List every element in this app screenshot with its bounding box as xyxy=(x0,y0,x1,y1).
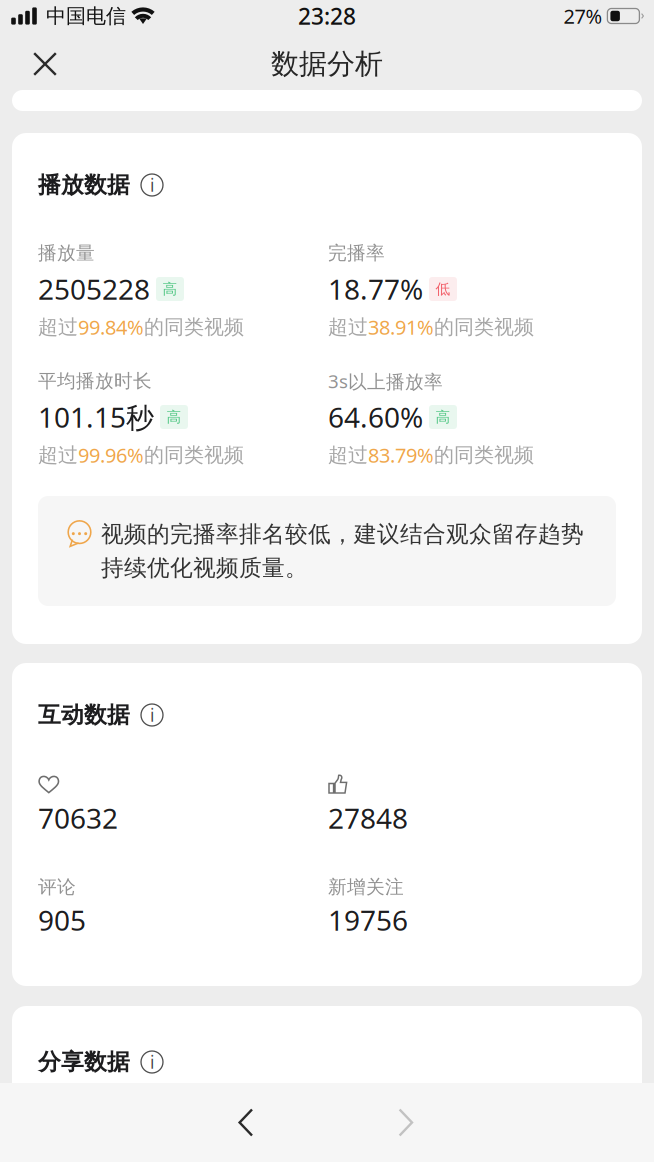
button[interactable]: 说明 xyxy=(141,704,163,726)
staticText: 高 xyxy=(435,408,450,426)
staticText: 19756 xyxy=(328,901,408,939)
staticText: 数据分析 xyxy=(271,47,383,81)
staticText: 超过 xyxy=(38,443,78,467)
staticText: 27% xyxy=(563,3,602,29)
staticText: i xyxy=(150,173,154,196)
staticText: 高 xyxy=(166,408,181,426)
staticText: 的同类视频 xyxy=(434,443,534,467)
staticText: 视频的完播率排名较低，建议结合观众留存趋势持续优化视频质量。 xyxy=(101,520,584,582)
staticText: 3s以上播放率 xyxy=(328,369,443,393)
staticText: 高 xyxy=(162,280,177,298)
staticText: 播放数据 xyxy=(38,171,130,199)
staticText: i xyxy=(150,1050,154,1073)
button[interactable]: 说明 xyxy=(141,174,163,196)
staticText: 中国电信 xyxy=(46,4,126,28)
staticText: 超过 xyxy=(38,315,78,339)
staticText: 27848 xyxy=(328,799,408,837)
staticText: 的同类视频 xyxy=(434,315,534,339)
button[interactable]: 说明 xyxy=(141,1051,163,1073)
staticText: 2505228 xyxy=(38,270,150,308)
button[interactable]: 关闭 xyxy=(0,35,90,93)
staticText: 新增关注 xyxy=(328,875,404,898)
staticText: 的同类视频 xyxy=(144,315,244,339)
staticText: 超过 xyxy=(328,315,368,339)
staticText: 64.60% xyxy=(328,398,423,436)
staticText: 101.15秒 xyxy=(38,398,154,436)
staticText: 评论 xyxy=(38,875,76,898)
staticText: 完播率 xyxy=(328,241,385,264)
staticText: 平均播放时长 xyxy=(38,369,152,392)
staticText: 超过 xyxy=(328,443,368,467)
staticText: 低 xyxy=(435,280,450,298)
staticText: 99.96% xyxy=(78,442,144,468)
staticText: 的同类视频 xyxy=(144,443,244,467)
staticText: 分享数据 xyxy=(38,1048,130,1076)
staticText: 83.79% xyxy=(368,442,434,468)
staticText: 38.91% xyxy=(368,314,434,340)
button[interactable]: 前进 xyxy=(368,1093,444,1151)
staticText: 互动数据 xyxy=(38,701,130,729)
staticText: 70632 xyxy=(38,799,118,837)
staticText: 18.77% xyxy=(328,270,423,308)
staticText: 23:28 xyxy=(298,1,356,31)
staticText: 905 xyxy=(38,901,86,939)
staticText: 播放量 xyxy=(38,241,95,264)
staticText: 99.84% xyxy=(78,314,144,340)
staticText: i xyxy=(150,703,154,726)
button[interactable]: 后退 xyxy=(208,1093,284,1151)
